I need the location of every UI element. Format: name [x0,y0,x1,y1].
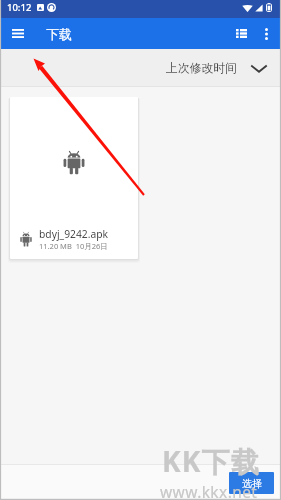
staticText: www.kkx.net [160,481,258,500]
button[interactable]: bdyj_9242.apk [10,97,138,259]
staticText: 选择 [242,477,262,490]
staticText: 下载 [46,26,72,42]
button[interactable]: More options [253,18,280,49]
staticText: 11.20 MB 10月26日 [39,241,108,251]
staticText: KK下载 [162,442,260,480]
button[interactable]: Open navigation menu [0,18,35,49]
button[interactable]: 选择 [229,472,274,494]
staticText: bdyj_9242.apk [39,227,109,241]
button[interactable]: 上次修改时间 [156,53,281,84]
staticText: 上次修改时间 [166,61,237,76]
staticText: 10:12 [7,1,32,14]
button[interactable]: Switch view [229,18,253,49]
